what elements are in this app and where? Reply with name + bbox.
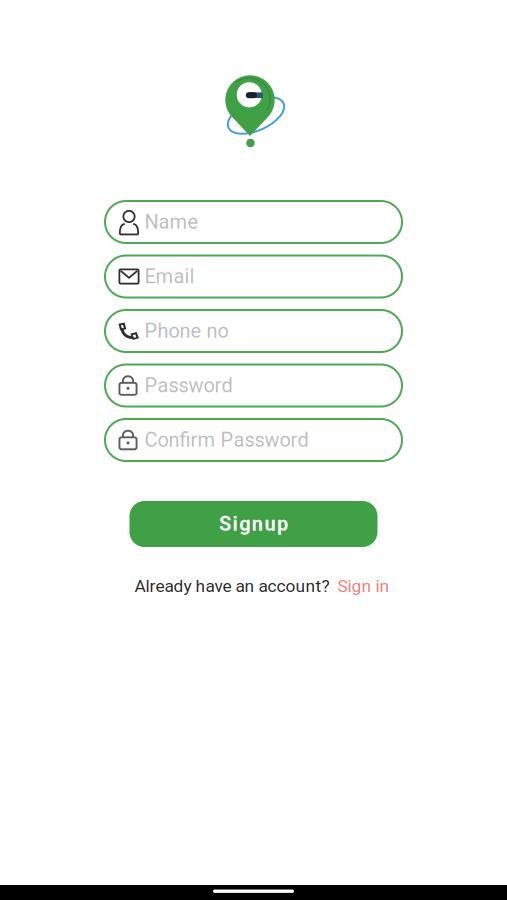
staticText: Sign in [337,576,389,596]
button[interactable]: Name [105,201,402,243]
staticText: Already have an account? [134,576,329,596]
button[interactable]: Signup [129,501,377,547]
staticText: Phone no [144,319,228,343]
button[interactable]: Password [105,364,402,406]
button[interactable]: Confirm Password [105,419,402,461]
staticText: Email [144,265,194,288]
button[interactable]: Sign in [337,576,389,596]
staticText: Confirm Password [144,428,308,452]
staticText: Signup [219,512,288,536]
staticText: Password [144,374,232,397]
button[interactable]: Email [105,255,402,297]
button[interactable]: Phone no [105,310,402,352]
staticText: Name [144,210,198,234]
